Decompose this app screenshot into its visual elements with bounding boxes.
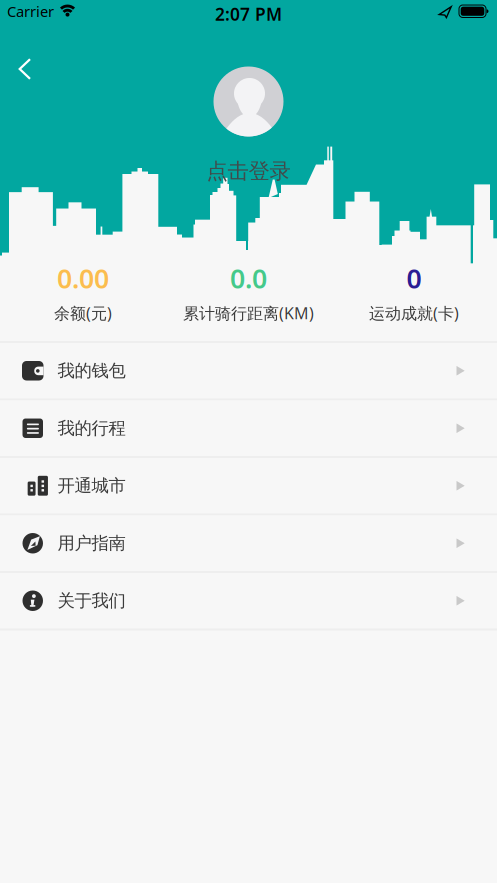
staticText: 0.00 [57,260,109,296]
button[interactable]: 登录 [213,66,283,136]
button[interactable]: 关于我们 [0,573,497,628]
button[interactable]: 我的行程 [0,400,497,456]
button[interactable]: 我的钱包 [0,343,497,398]
button[interactable]: Back [8,48,41,90]
button[interactable]: 点击登录 [206,158,290,184]
staticText: Carrier [7,1,54,21]
staticText: 运动成就(卡) [369,302,459,324]
staticText: 累计骑行距离(KM) [183,302,314,324]
staticText: 0.0 [230,260,267,296]
staticText: 关于我们 [57,590,125,611]
staticText: 0 [407,260,422,296]
button[interactable]: 用户指南 [0,515,497,571]
staticText: 点击登录 [206,158,290,184]
staticText: 开通城市 [57,475,125,496]
staticText: 我的钱包 [57,360,125,381]
staticText: 用户指南 [57,533,125,554]
staticText: 余额(元) [54,302,112,324]
staticText: 我的行程 [57,418,125,439]
staticText: 2:07 PM [215,2,282,25]
button[interactable]: 开通城市 [0,458,497,513]
